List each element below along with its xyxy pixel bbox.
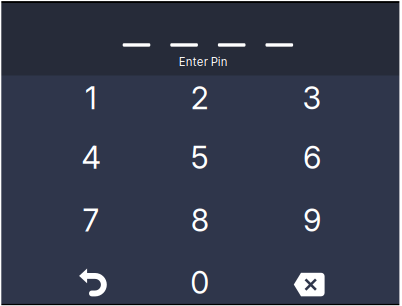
button[interactable]: 9 [258, 191, 366, 249]
button[interactable]: Delete [255, 256, 363, 306]
button[interactable]: 8 [146, 191, 254, 249]
button[interactable]: Undo [39, 253, 147, 306]
staticText: 0 [190, 264, 209, 301]
staticText: 7 [82, 202, 99, 239]
staticText: 1 [85, 80, 97, 117]
staticText: 9 [303, 202, 321, 239]
staticText: 8 [191, 202, 209, 239]
staticText: 5 [191, 139, 209, 176]
button[interactable]: 6 [258, 129, 366, 187]
button[interactable]: 4 [37, 129, 145, 187]
staticText: 6 [303, 139, 321, 176]
button[interactable]: 5 [146, 129, 254, 187]
staticText: 3 [303, 80, 322, 117]
staticText: 4 [81, 139, 100, 176]
button[interactable]: 1 [37, 69, 145, 127]
button[interactable]: 7 [37, 191, 145, 249]
button[interactable]: 3 [258, 69, 366, 127]
button[interactable]: 2 [146, 69, 254, 127]
staticText: 2 [191, 80, 209, 117]
button[interactable]: 0 [146, 254, 254, 306]
staticText: Enter Pin [179, 55, 228, 69]
